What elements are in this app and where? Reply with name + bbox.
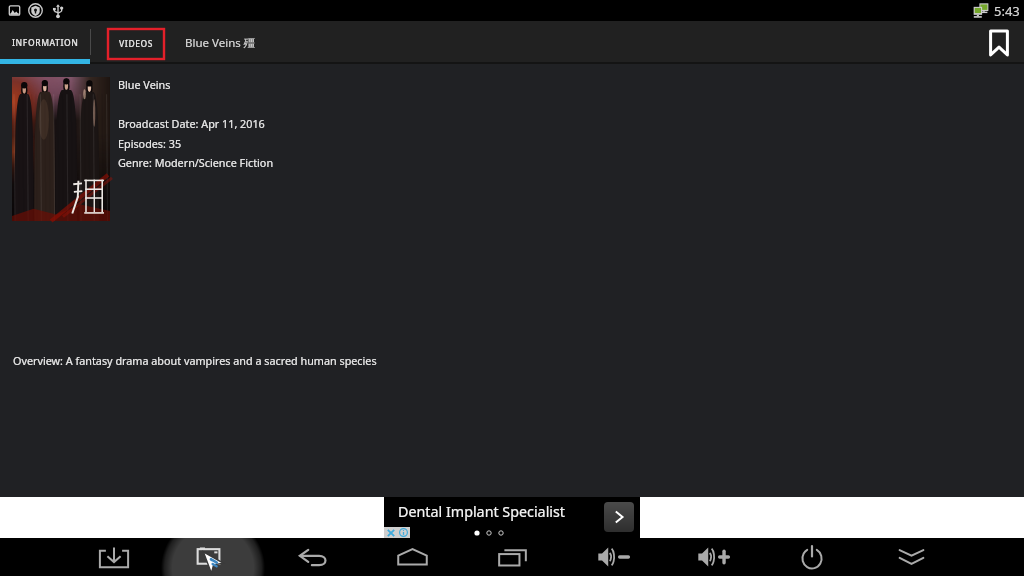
staticText: Broadcast Date: Apr 11, 2016: [118, 116, 265, 131]
staticText: Blue Veins 殭: [185, 35, 256, 51]
button[interactable]: INFORMATION: [0, 21, 90, 64]
staticText: INFORMATION: [12, 37, 79, 49]
button[interactable]: Dental Implant Specialist: [384, 497, 640, 538]
button[interactable]: Volume up: [673, 538, 753, 576]
staticText: VIDEOS: [119, 38, 154, 50]
staticText: Overview: A fantasy drama about vampires…: [13, 353, 377, 368]
button[interactable]: Ad info: [397, 527, 410, 538]
button[interactable]: Download: [74, 538, 154, 576]
staticText: 5:43: [994, 2, 1020, 20]
button[interactable]: Collapse: [871, 538, 951, 576]
staticText: Blue Veins: [118, 77, 171, 92]
staticText: Episodes: 35: [118, 136, 182, 151]
button[interactable]: Back: [273, 538, 353, 576]
button[interactable]: Next ad: [604, 502, 634, 532]
staticText: Dental Implant Specialist: [398, 502, 566, 521]
button[interactable]: Close ad: [384, 527, 397, 538]
button[interactable]: Bookmark: [979, 23, 1019, 63]
button[interactable]: Screenshot: [173, 538, 253, 576]
button[interactable]: VIDEOS: [108, 29, 164, 59]
button[interactable]: Volume down: [573, 538, 653, 576]
staticText: Genre: Modern/Science Fiction: [118, 155, 274, 170]
button[interactable]: Power: [772, 538, 852, 576]
button[interactable]: Home: [372, 538, 452, 576]
button[interactable]: Recents: [472, 538, 552, 576]
